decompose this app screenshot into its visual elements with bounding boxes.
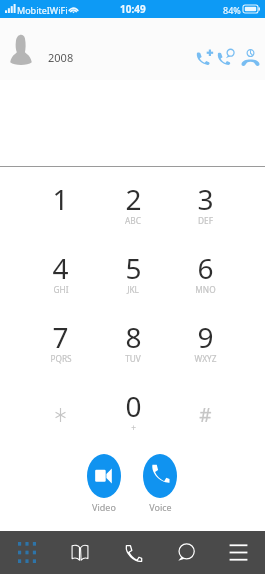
button[interactable]: Message — [217, 48, 235, 66]
staticText: # — [199, 402, 212, 428]
button[interactable]: Contacts — [53, 531, 106, 574]
staticText: 9 — [197, 318, 214, 356]
staticText: + — [131, 422, 136, 433]
button[interactable]: 8 — [97, 305, 169, 374]
button[interactable]: 9 — [169, 305, 241, 374]
button[interactable]: 3 — [169, 167, 241, 236]
button[interactable]: 2 — [97, 167, 169, 236]
button[interactable]: Messages — [159, 531, 212, 574]
button[interactable]: Dialpad — [0, 531, 53, 574]
staticText: Video — [92, 501, 116, 513]
staticText: 7 — [52, 318, 69, 356]
button[interactable]: Recents — [106, 531, 159, 574]
button[interactable]: 6 — [169, 236, 241, 305]
button[interactable]: Video — [87, 454, 121, 513]
staticText: PQRS — [50, 353, 72, 364]
button[interactable]: 0 — [97, 374, 169, 443]
button[interactable]: Add call — [196, 48, 214, 66]
button[interactable]: Menu — [212, 531, 265, 574]
staticText: TUV — [125, 353, 141, 364]
staticText: DEF — [198, 215, 213, 226]
staticText: 2 — [125, 180, 142, 218]
staticText: 3 — [197, 180, 214, 218]
staticText: 2008 — [48, 50, 74, 65]
button[interactable]: 7 — [24, 305, 97, 374]
staticText: WXYZ — [194, 353, 217, 364]
button[interactable]: 1 — [24, 167, 97, 236]
staticText: GHI — [53, 284, 69, 295]
staticText: Voice — [149, 501, 172, 513]
staticText: MNO — [195, 284, 216, 295]
button[interactable]: 4 — [24, 236, 97, 305]
staticText: ABC — [125, 215, 141, 226]
staticText: MobiteIWiFi — [17, 4, 68, 16]
button[interactable]: 5 — [97, 236, 169, 305]
staticText: 1 — [52, 180, 69, 218]
button[interactable]: Voice — [143, 454, 177, 513]
staticText: 8 — [125, 318, 142, 356]
staticText: 0 — [125, 387, 142, 425]
button[interactable] — [24, 374, 97, 443]
staticText: 4 — [52, 249, 69, 287]
staticText: JKL — [127, 284, 139, 295]
staticText: 5 — [125, 249, 142, 287]
staticText: 84% — [223, 4, 241, 16]
staticText: 10:49 — [120, 2, 146, 16]
button[interactable]: Call history — [241, 48, 259, 66]
button[interactable]: # — [169, 374, 241, 443]
staticText: 6 — [197, 249, 214, 287]
